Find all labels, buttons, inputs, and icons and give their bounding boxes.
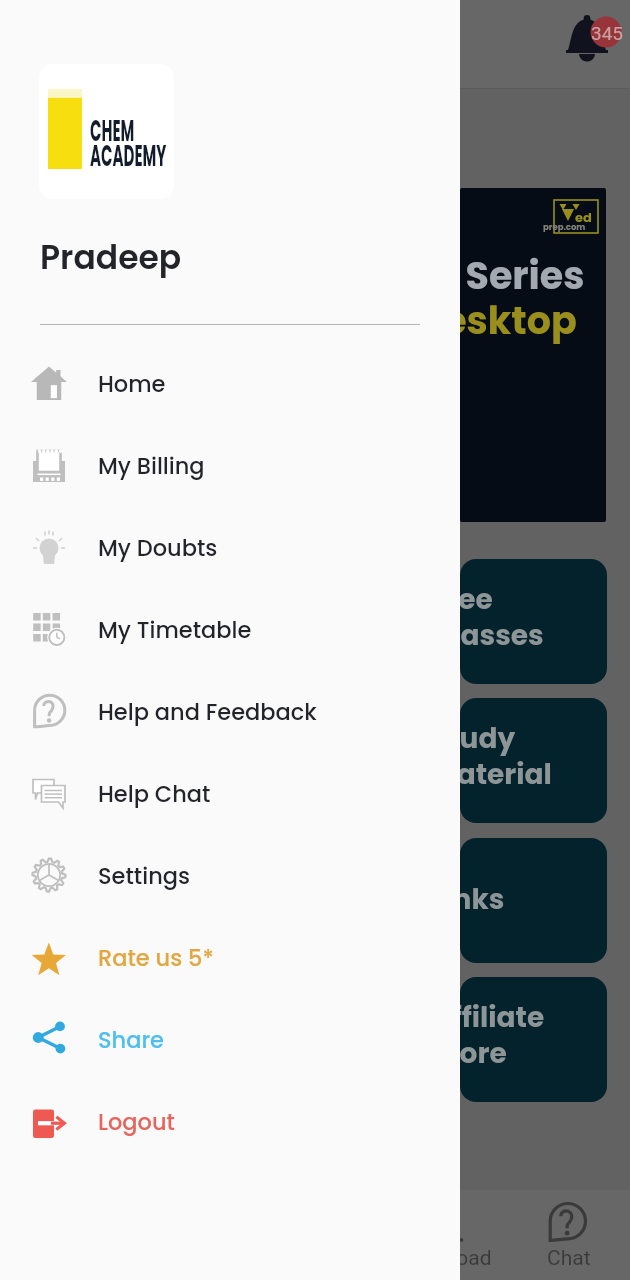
staticText: Links <box>460 880 607 919</box>
staticText: CHEM ACADEMY <box>90 110 174 177</box>
button[interactable]: Share <box>0 998 460 1080</box>
staticText: Settings <box>98 860 191 891</box>
staticText: Free Classes <box>460 580 607 654</box>
staticText: Rate us 5* <box>98 942 214 973</box>
button[interactable]: Study Material <box>460 698 607 823</box>
button[interactable]: Logout <box>0 1080 460 1162</box>
staticText: My Billing <box>98 450 205 481</box>
button[interactable]: Downloads <box>398 1190 498 1280</box>
staticText: Share <box>98 1024 164 1055</box>
staticText: My Doubts <box>98 532 218 563</box>
button[interactable]: Free Classes <box>460 559 607 684</box>
staticText: prep.com <box>543 221 603 233</box>
button[interactable]: My Doubts <box>0 506 460 588</box>
staticText: Chat <box>547 1246 591 1271</box>
button[interactable]: Home <box>0 342 460 424</box>
button[interactable]: Help Chat <box>0 752 460 834</box>
staticText: ed <box>575 208 592 226</box>
staticText: On Desktop <box>460 294 606 347</box>
staticText: Help and Feedback <box>98 696 317 727</box>
staticText: Home <box>98 368 166 399</box>
button[interactable]: Affiliate Store <box>460 977 607 1102</box>
staticText: Downloads <box>398 1246 498 1280</box>
button[interactable]: My Billing <box>0 424 460 506</box>
button[interactable]: Settings <box>0 834 460 916</box>
staticText: 345 <box>591 22 624 44</box>
button[interactable]: Links <box>460 838 607 963</box>
button[interactable]: Rate us 5* <box>0 916 460 998</box>
button[interactable]: Help and Feedback <box>0 670 460 752</box>
staticText: Study Material <box>460 719 607 793</box>
button[interactable]: My Timetable <box>0 588 460 670</box>
staticText: Affiliate Store <box>460 998 607 1072</box>
button[interactable]: Chat <box>526 1190 608 1280</box>
staticText: Pradeep <box>40 234 182 280</box>
staticText: Logout <box>98 1106 175 1137</box>
staticText: Test Series <box>460 249 606 302</box>
button[interactable]: Notifications <box>563 10 623 68</box>
staticText: My Timetable <box>98 614 252 645</box>
staticText: Help Chat <box>98 778 211 809</box>
button[interactable]: ed <box>460 188 606 522</box>
